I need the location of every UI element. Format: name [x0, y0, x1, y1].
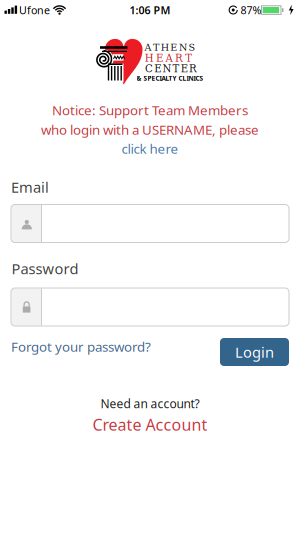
- staticText: 1:06 PM: [129, 3, 170, 17]
- staticText: 87%: [240, 3, 261, 17]
- staticText: Notice: Support Team Members: [52, 101, 248, 119]
- button[interactable]: Create Account: [92, 414, 207, 435]
- button[interactable]: Forgot your password?: [11, 338, 151, 355]
- staticText: E: [170, 42, 177, 53]
- staticText: Login: [235, 342, 274, 362]
- staticText: E: [181, 63, 188, 75]
- button[interactable]: Password: [11, 288, 289, 326]
- button[interactable]: Email: [11, 204, 289, 242]
- staticText: S: [188, 42, 195, 53]
- button[interactable]: Login: [220, 338, 289, 366]
- button[interactable]: click here: [121, 140, 178, 157]
- staticText: Password: [11, 259, 78, 278]
- staticText: R: [189, 63, 197, 75]
- staticText: A: [144, 42, 151, 53]
- staticText: who login with a USERNAME, please: [41, 121, 259, 138]
- staticText: Email: [11, 177, 49, 197]
- staticText: E: [156, 52, 163, 64]
- staticText: N: [179, 42, 187, 53]
- staticText: R: [175, 52, 183, 64]
- staticText: & SPECIALTY CLINICS: [136, 74, 203, 83]
- staticText: Create Account: [92, 414, 207, 435]
- staticText: Ufone: [19, 3, 50, 17]
- staticText: A: [165, 52, 172, 64]
- staticText: N: [162, 63, 171, 75]
- staticText: Need an account?: [100, 395, 199, 411]
- staticText: C: [145, 63, 153, 75]
- staticText: T: [153, 42, 159, 53]
- staticText: H: [145, 52, 154, 64]
- staticText: click here: [121, 140, 178, 157]
- staticText: Forgot your password?: [11, 338, 151, 355]
- staticText: T: [173, 63, 180, 75]
- staticText: H: [161, 42, 169, 53]
- staticText: T: [185, 52, 192, 64]
- staticText: E: [154, 63, 161, 75]
